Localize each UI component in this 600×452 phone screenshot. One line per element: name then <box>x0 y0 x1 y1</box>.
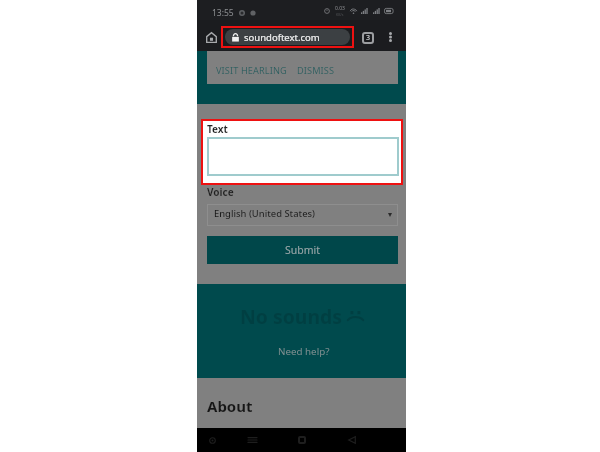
button[interactable]: More options <box>381 28 399 46</box>
button[interactable]: soundoftext.com <box>221 26 354 48</box>
button[interactable]: Need help? <box>278 345 330 358</box>
button[interactable]: Recent apps <box>242 430 262 450</box>
staticText: 13:55 <box>212 7 234 19</box>
staticText: English (United States) <box>214 207 316 220</box>
button[interactable]: DISMISS <box>297 64 335 77</box>
staticText: 0.03 <box>335 5 345 12</box>
staticText: Submit <box>285 243 321 257</box>
staticText: KB/s <box>336 12 344 17</box>
button[interactable]: Submit <box>207 236 398 264</box>
staticText: soundoftext.com <box>244 31 320 44</box>
staticText: No sounds <box>240 303 342 329</box>
button[interactable]: Switch tabs, 3 open <box>362 32 374 44</box>
staticText: Voice <box>207 185 234 199</box>
button[interactable]: Home <box>292 430 312 450</box>
button[interactable]: VISIT HEARLING <box>216 64 287 77</box>
button[interactable]: Back <box>342 430 362 450</box>
button[interactable]: English (United States) <box>207 204 398 226</box>
staticText: Text <box>207 122 228 136</box>
button[interactable]: About <box>207 396 253 416</box>
staticText: 3 <box>366 33 371 43</box>
button[interactable]: Text to speak <box>207 137 399 176</box>
button[interactable]: Assistant <box>202 430 222 450</box>
button[interactable]: Home page <box>201 27 221 47</box>
